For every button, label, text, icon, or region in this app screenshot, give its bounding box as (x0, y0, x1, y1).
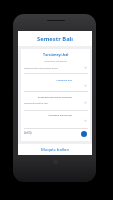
button[interactable]: Müqavilə balının tipi (24, 101, 87, 104)
staticText: Məqalə balları (41, 147, 70, 153)
staticText: İmtahanlarda iştirak vəziyyəti (37, 95, 72, 98)
button[interactable] (24, 84, 87, 87)
staticText: Semestr Balı (37, 35, 74, 43)
staticText: məlumatı saxlanılıb (44, 59, 67, 62)
staticText: Ad/Qı (24, 131, 32, 135)
staticText: Müqavilə balının tipi (48, 113, 72, 116)
staticText: Müqavilə balı (56, 78, 72, 81)
staticText: Tərcümeyi-hal (43, 52, 69, 57)
button[interactable]: Əlavə et (81, 131, 87, 137)
button[interactable]: Semestr balı üzrə əlavə qeyd (24, 66, 87, 69)
button[interactable] (24, 119, 87, 122)
staticText: Semestr balı üzrə əlavə qeyd (24, 66, 84, 69)
staticText: Müqavilə balının tipi (24, 101, 84, 104)
